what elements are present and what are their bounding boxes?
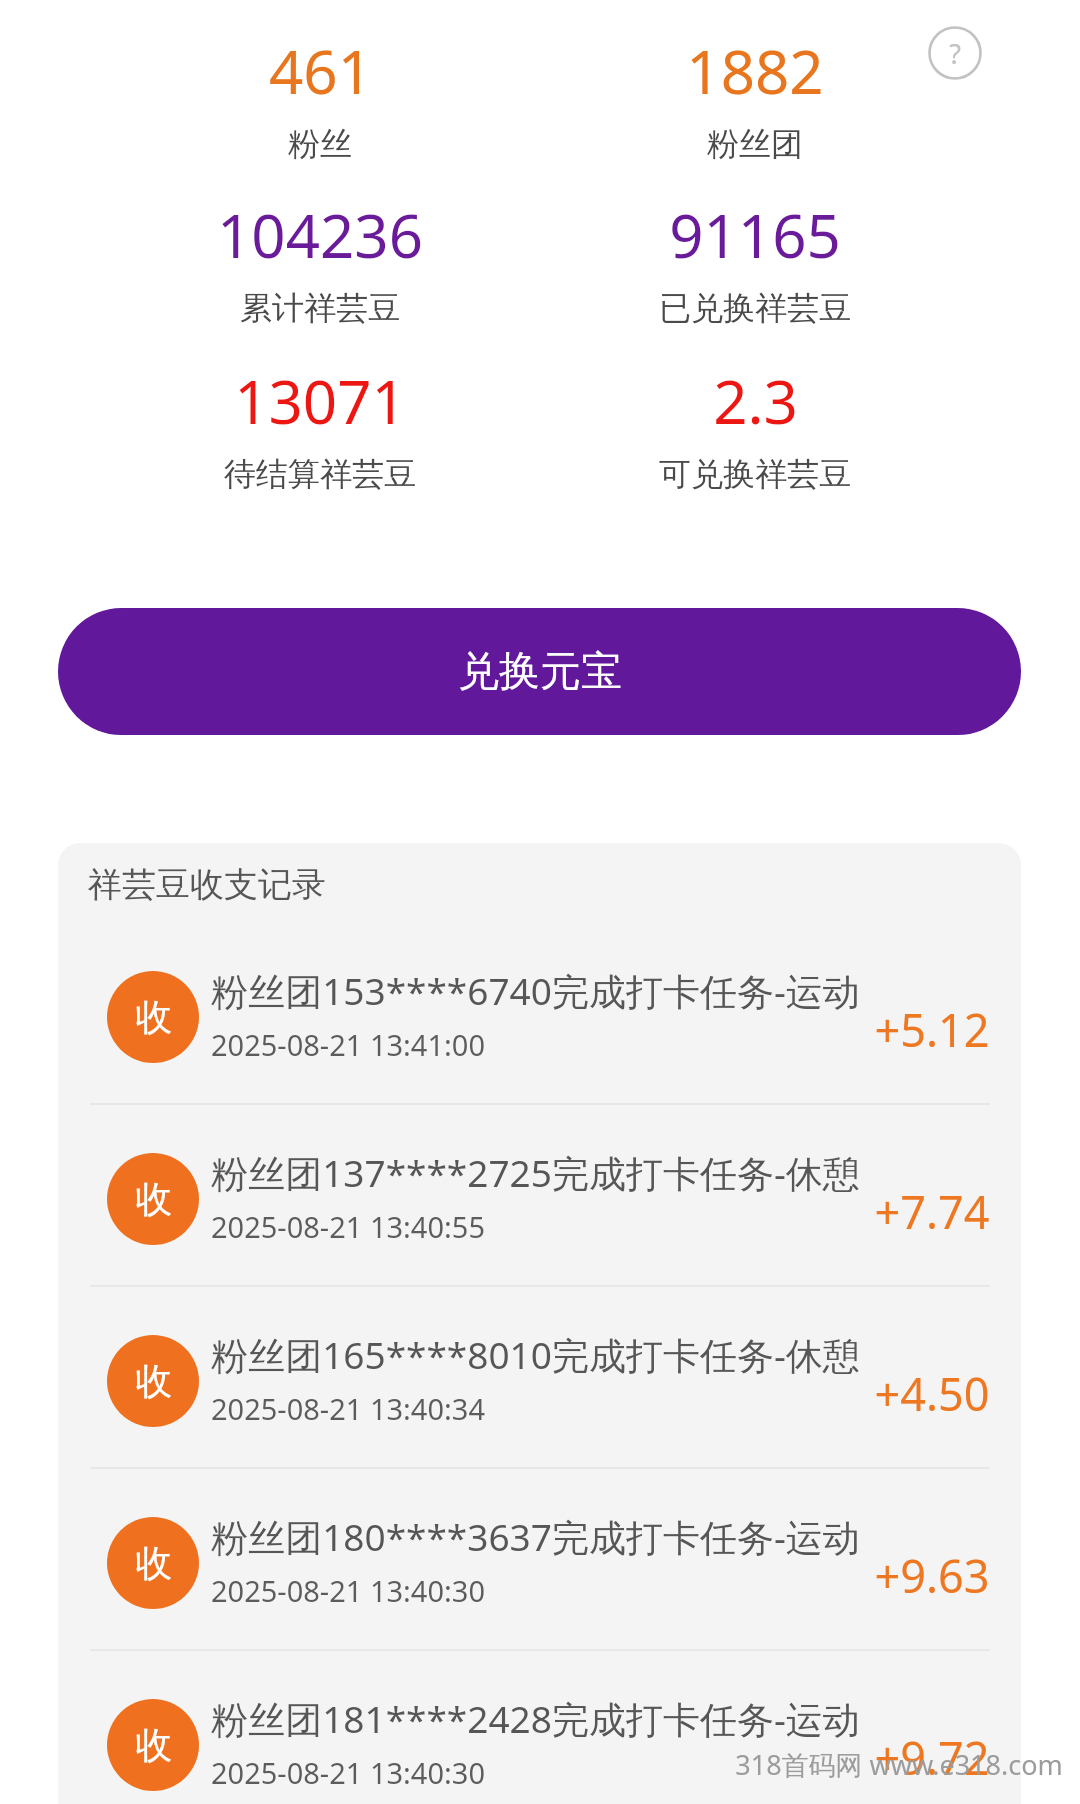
staticText: 粉丝团180****3637完成打卡任务-运动 bbox=[211, 1511, 860, 1562]
staticText: 收 bbox=[135, 1540, 172, 1587]
staticText: 粉丝团181****2428完成打卡任务-运动 bbox=[211, 1693, 860, 1744]
button[interactable]: Help bbox=[928, 26, 982, 80]
staticText: 粉丝团137****2725完成打卡任务-休憩 bbox=[211, 1147, 860, 1198]
staticText: 318首码网 www.e318.com bbox=[735, 1746, 1063, 1783]
staticText: 收 bbox=[135, 1358, 172, 1405]
staticText: +7.74 bbox=[874, 1181, 990, 1242]
staticText: 收 bbox=[135, 1176, 172, 1223]
staticText: 2.3 bbox=[713, 360, 798, 442]
staticText: 2025-08-21 13:40:34 bbox=[211, 1389, 485, 1428]
staticText: 461 bbox=[269, 30, 372, 112]
staticText: 粉丝团165****8010完成打卡任务-休憩 bbox=[211, 1329, 860, 1380]
button[interactable]: 收 bbox=[58, 1297, 1021, 1475]
button[interactable]: 收 bbox=[58, 1115, 1021, 1293]
staticText: 可兑换祥芸豆 bbox=[659, 454, 851, 494]
staticText: 收 bbox=[135, 1722, 172, 1769]
staticText: 兑换元宝 bbox=[458, 646, 622, 698]
staticText: ? bbox=[949, 35, 961, 72]
staticText: 收 bbox=[135, 994, 172, 1041]
button[interactable]: 收 bbox=[58, 1479, 1021, 1657]
staticText: 待结算祥芸豆 bbox=[224, 454, 416, 494]
staticText: 2025-08-21 13:40:30 bbox=[211, 1571, 485, 1610]
staticText: 2025-08-21 13:40:55 bbox=[211, 1207, 485, 1246]
button[interactable]: 收 bbox=[58, 1661, 1021, 1804]
staticText: 累计祥芸豆 bbox=[240, 288, 400, 328]
staticText: 粉丝团 bbox=[707, 124, 803, 164]
staticText: 1882 bbox=[686, 30, 824, 112]
staticText: 粉丝团153****6740完成打卡任务-运动 bbox=[211, 965, 860, 1016]
staticText: 已兑换祥芸豆 bbox=[659, 288, 851, 328]
staticText: 13071 bbox=[234, 360, 406, 442]
staticText: +9.72 bbox=[874, 1727, 990, 1788]
staticText: +9.63 bbox=[874, 1545, 990, 1606]
button[interactable]: 收 bbox=[58, 933, 1021, 1111]
staticText: 91165 bbox=[669, 194, 841, 276]
staticText: 2025-08-21 13:40:30 bbox=[211, 1753, 485, 1792]
staticText: +4.50 bbox=[874, 1363, 990, 1424]
staticText: 104236 bbox=[217, 194, 423, 276]
staticText: 祥芸豆收支记录 bbox=[88, 863, 326, 906]
button[interactable]: 兑换元宝 bbox=[58, 608, 1021, 735]
staticText: 2025-08-21 13:41:00 bbox=[211, 1025, 485, 1064]
staticText: +5.12 bbox=[874, 999, 990, 1060]
staticText: 粉丝 bbox=[288, 124, 352, 164]
